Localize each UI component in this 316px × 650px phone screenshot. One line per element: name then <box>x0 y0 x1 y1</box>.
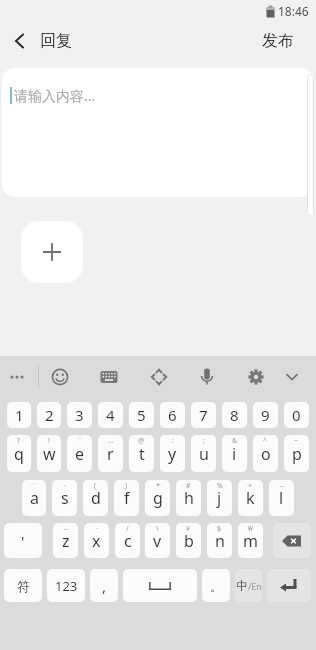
button[interactable] <box>278 363 306 391</box>
staticText: , <box>102 576 107 596</box>
staticText: $ <box>217 524 222 534</box>
button[interactable]: 发布 <box>254 23 302 59</box>
button[interactable]: 6 <box>160 402 185 428</box>
button[interactable]: h <box>176 480 201 516</box>
staticText: d <box>91 487 101 509</box>
button[interactable] <box>0 22 40 60</box>
staticText: 4 <box>106 405 115 425</box>
button[interactable]: y <box>160 435 185 472</box>
button[interactable] <box>273 523 311 558</box>
staticText: 发布 <box>262 31 294 51</box>
button[interactable]: l <box>269 480 294 516</box>
staticText: # <box>186 481 191 491</box>
button[interactable]: n <box>207 523 232 558</box>
staticText: ) <box>125 481 128 491</box>
button[interactable]: ' <box>4 523 42 558</box>
staticText: 123 <box>55 577 78 595</box>
button[interactable]: b <box>176 523 201 558</box>
button[interactable]: 123 <box>47 569 85 602</box>
button[interactable] <box>193 363 221 391</box>
button[interactable]: q <box>7 435 31 472</box>
staticText: ; <box>203 436 205 446</box>
button[interactable]: j <box>207 480 232 516</box>
staticText: k <box>246 487 255 509</box>
button[interactable]: d <box>83 480 108 516</box>
staticText: ( <box>94 481 97 491</box>
staticText: 1 <box>15 405 24 425</box>
button[interactable]: 8 <box>222 402 247 428</box>
button[interactable]: 3 <box>67 402 92 428</box>
staticText: + <box>248 481 253 491</box>
button[interactable] <box>123 569 197 602</box>
button[interactable]: v <box>145 523 170 558</box>
staticText: · <box>96 524 98 534</box>
staticText: z <box>62 530 70 552</box>
button[interactable]: k <box>238 480 263 516</box>
button[interactable]: o <box>253 435 278 472</box>
button[interactable]: 2 <box>37 402 61 428</box>
button[interactable]: w <box>37 435 61 472</box>
staticText: ^ <box>263 436 268 446</box>
button[interactable]: i <box>222 435 247 472</box>
button[interactable]: 符 <box>4 569 42 602</box>
staticText: q <box>14 443 24 465</box>
button[interactable]: 7 <box>191 402 216 428</box>
staticText: t <box>139 443 145 465</box>
button[interactable]: 请输入内容... <box>2 68 314 197</box>
staticText: u <box>199 443 209 465</box>
button[interactable] <box>145 363 173 391</box>
staticText: m <box>243 530 258 552</box>
button[interactable] <box>242 363 270 391</box>
button[interactable]: 5 <box>129 402 154 428</box>
staticText: ? <box>17 436 21 446</box>
button[interactable]: g <box>145 480 170 516</box>
staticText: l <box>279 487 284 509</box>
staticText: e <box>75 443 85 465</box>
staticText: 7 <box>199 405 208 425</box>
button[interactable]: p <box>284 435 309 472</box>
staticText: n <box>215 530 225 552</box>
button[interactable]: f <box>114 480 139 516</box>
staticText: 3 <box>75 405 84 425</box>
button[interactable]: e <box>67 435 92 472</box>
staticText: ! <box>48 436 50 446</box>
button[interactable]: u <box>191 435 216 472</box>
staticText: c <box>124 530 132 552</box>
button[interactable]: t <box>129 435 154 472</box>
button[interactable] <box>267 569 311 602</box>
button[interactable] <box>46 363 74 391</box>
button[interactable]: c <box>115 523 140 558</box>
staticText: & <box>232 436 238 446</box>
staticText: i <box>232 443 237 465</box>
button[interactable]: 4 <box>98 402 123 428</box>
staticText: 回复 <box>40 31 72 51</box>
button[interactable]: m <box>238 523 263 558</box>
button[interactable]: 。 <box>202 569 230 602</box>
staticText: a <box>30 487 39 509</box>
staticText: 9 <box>261 405 270 425</box>
button[interactable]: a <box>22 480 46 516</box>
button[interactable]: , <box>90 569 118 602</box>
staticText: 18:46 <box>278 3 309 19</box>
button[interactable]: 中 <box>235 569 262 602</box>
staticText: – <box>280 481 284 491</box>
button[interactable] <box>3 363 31 391</box>
staticText: 0 <box>292 405 301 425</box>
staticText: 8 <box>230 405 239 425</box>
button[interactable]: r <box>98 435 123 472</box>
button[interactable]: 9 <box>253 402 278 428</box>
staticText: f <box>124 487 130 509</box>
staticText: 符 <box>17 578 30 594</box>
staticText: y <box>168 443 177 465</box>
staticText: : <box>172 436 174 446</box>
button[interactable]: 1 <box>7 402 31 428</box>
staticText: j <box>217 487 222 509</box>
button[interactable]: x <box>84 523 109 558</box>
button[interactable] <box>95 363 123 391</box>
staticText: · <box>64 481 66 491</box>
button[interactable]: s <box>52 480 77 516</box>
staticText: h <box>184 487 194 509</box>
button[interactable]: 0 <box>284 402 309 428</box>
button[interactable] <box>21 221 83 283</box>
button[interactable]: z <box>53 523 78 558</box>
